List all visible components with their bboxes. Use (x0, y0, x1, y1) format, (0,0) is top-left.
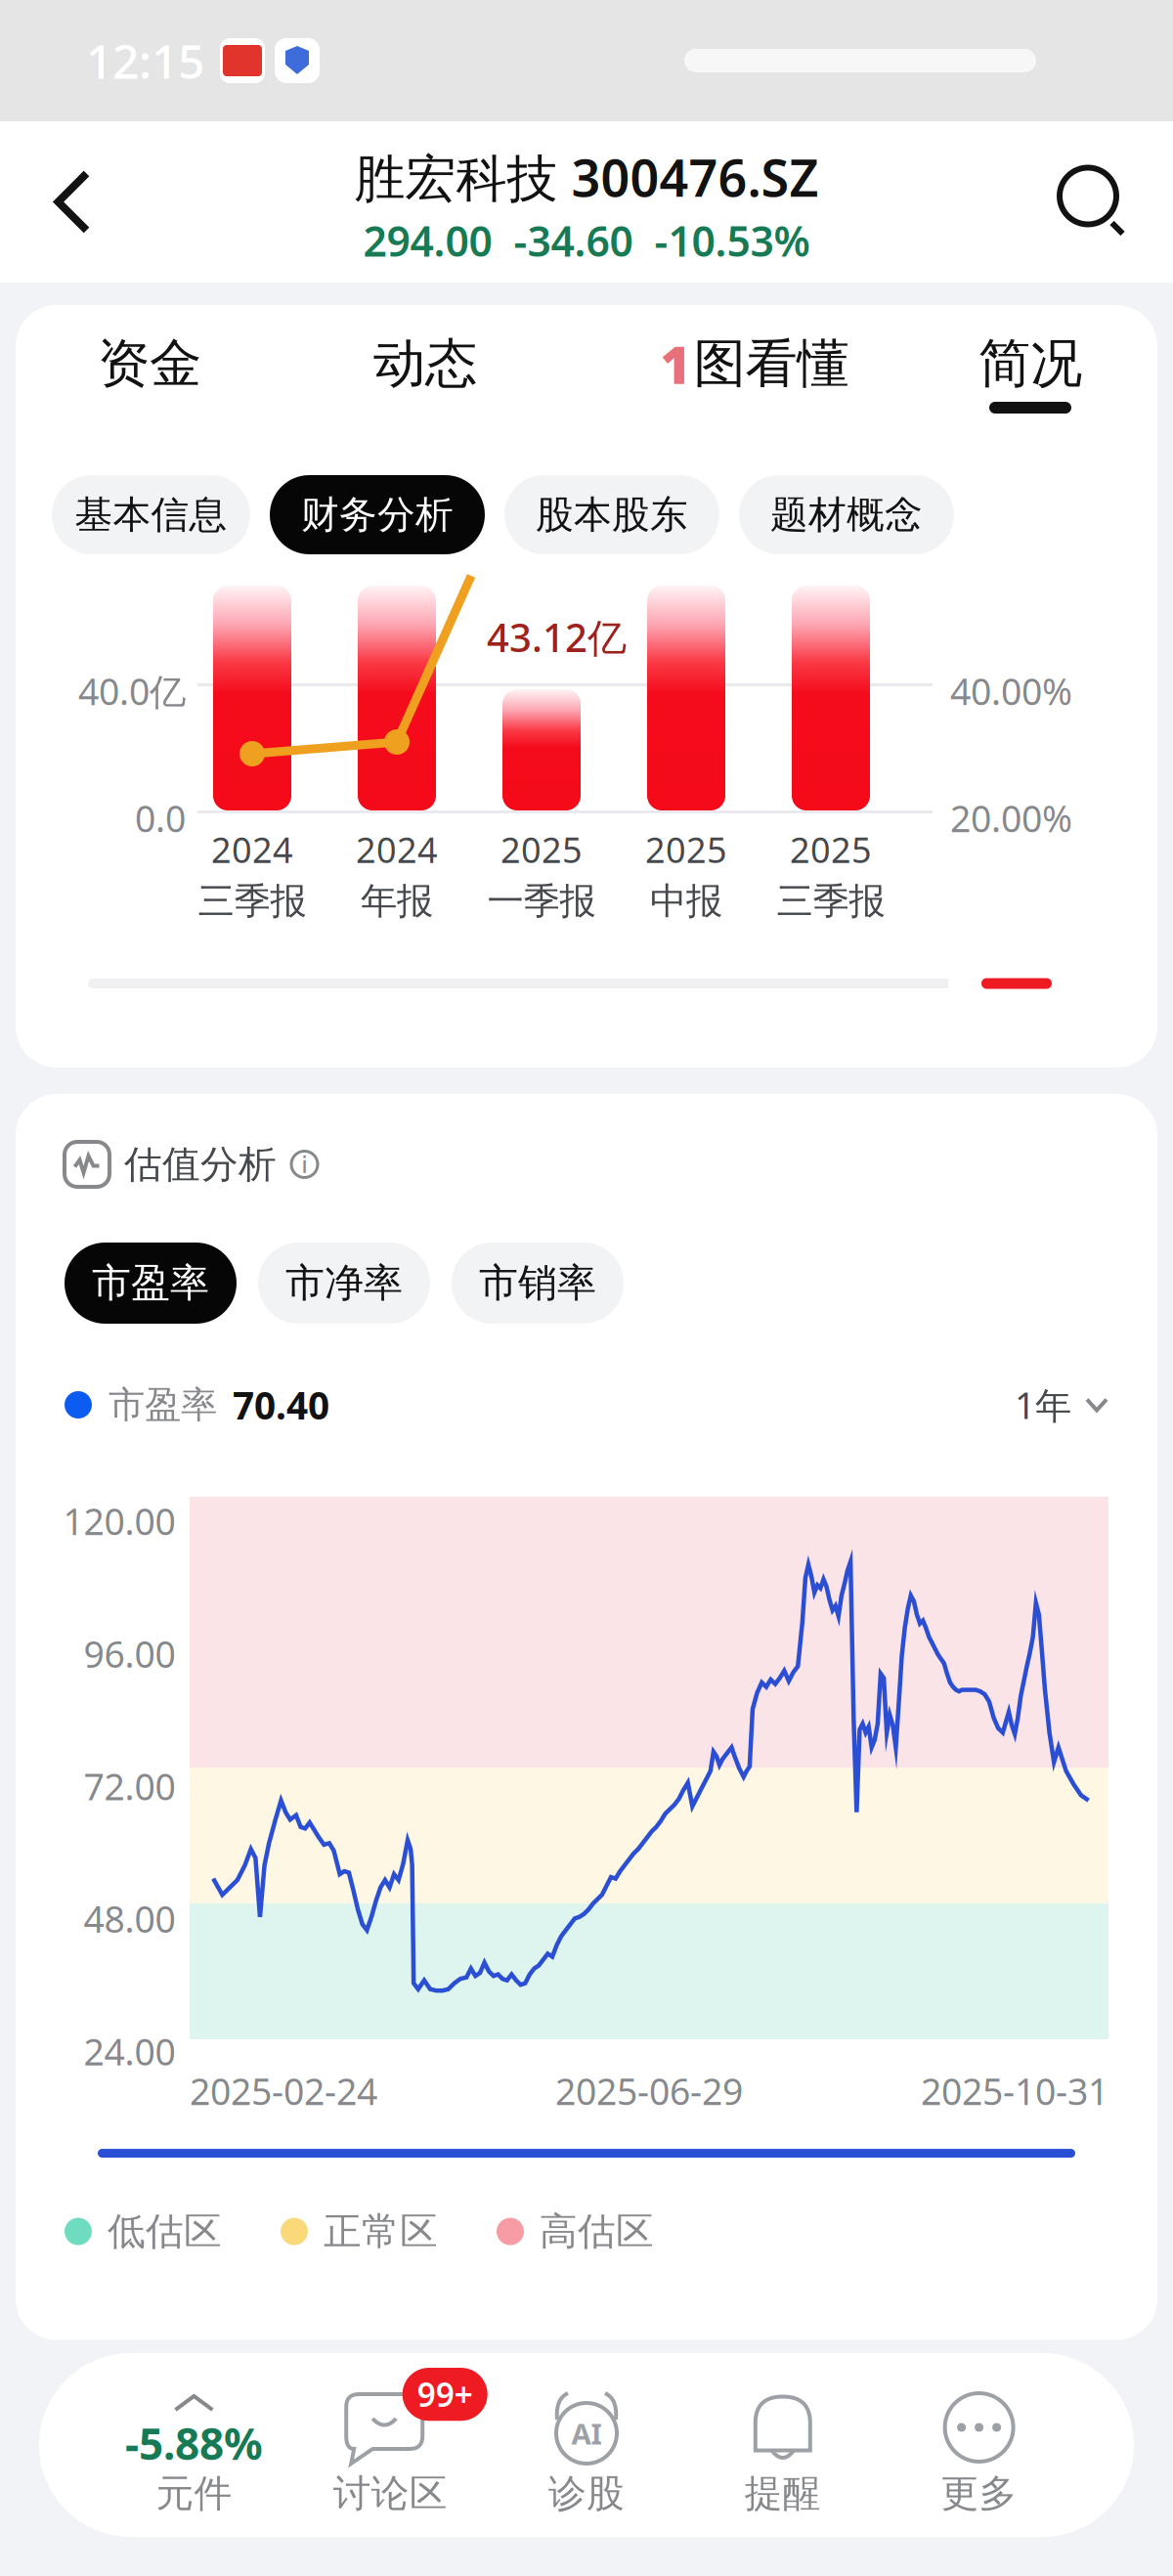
staticText: 胜宏科技 300476.SZ (354, 143, 819, 211)
staticText: 财务分析 (301, 492, 454, 538)
staticText: 0.0 (135, 794, 186, 842)
staticText: 市净率 (285, 1259, 403, 1307)
button[interactable]: 1 (608, 336, 901, 414)
staticText: 2025-06-29 (555, 2067, 743, 2115)
staticText: 1 (660, 329, 691, 398)
staticText: -5.88% (125, 2415, 263, 2472)
staticText: 元件 (156, 2470, 232, 2517)
staticText: 三季报 (198, 879, 306, 924)
staticText: 市销率 (479, 1259, 596, 1307)
button[interactable]: 市盈率 (65, 1243, 237, 1324)
button[interactable]: Search (1028, 121, 1173, 283)
staticText: 70.40 (233, 1380, 329, 1430)
staticText: 72.00 (84, 1762, 175, 1810)
button[interactable]: -5.88% (96, 2377, 292, 2513)
staticText: 99+ (417, 2373, 473, 2416)
button[interactable]: 市销率 (452, 1243, 624, 1324)
staticText: 基本信息 (75, 492, 227, 538)
staticText: 294.00 -34.60 -10.53% (363, 213, 810, 268)
staticText: 12:15 (86, 29, 204, 92)
staticText: 2025-02-24 (190, 2067, 377, 2115)
staticText: 题材概念 (770, 492, 923, 538)
button[interactable]: 财务分析 (270, 475, 485, 554)
staticText: 2024 (211, 826, 293, 873)
staticText: 动态 (373, 332, 477, 396)
staticText: 提醒 (745, 2470, 821, 2517)
staticText: 简况 (978, 332, 1082, 396)
staticText: 三季报 (777, 879, 885, 924)
staticText: 20.00% (950, 794, 1072, 842)
staticText: 2025 (645, 826, 727, 873)
staticText: 48.00 (84, 1894, 175, 1943)
staticText: 2025 (790, 826, 872, 873)
staticText: 43.12亿 (487, 611, 627, 663)
button[interactable]: 更多 (881, 2377, 1077, 2513)
button[interactable]: 市净率 (258, 1243, 430, 1324)
button[interactable]: 1年 (1015, 1381, 1108, 1429)
staticText: 股本股东 (536, 492, 688, 538)
staticText: 2025 (500, 826, 583, 873)
staticText: 一季报 (487, 879, 596, 924)
staticText: AI (571, 2414, 602, 2452)
button[interactable]: 提醒 (685, 2377, 881, 2513)
button[interactable]: 基本信息 (52, 475, 250, 554)
staticText: 2025-10-31 (921, 2067, 1108, 2115)
staticText: 市盈率 (92, 1259, 209, 1307)
staticText: 40.0亿 (78, 667, 186, 715)
staticText: 中报 (650, 879, 722, 924)
button[interactable]: 资金 (3, 336, 296, 414)
button[interactable]: Back (0, 121, 145, 283)
staticText: 市盈率 (109, 1382, 217, 1427)
button[interactable]: 题材概念 (739, 475, 954, 554)
staticText: 1年 (1015, 1381, 1071, 1429)
staticText: 120.00 (63, 1497, 175, 1545)
staticText: 图看懂 (694, 332, 849, 396)
staticText: 年报 (361, 879, 433, 924)
button[interactable]: 99+ (292, 2377, 488, 2513)
staticText: 更多 (941, 2470, 1017, 2517)
staticText: 讨论区 (333, 2470, 447, 2517)
staticText: 估值分析 (124, 1141, 277, 1188)
button[interactable]: 简况 (884, 336, 1173, 414)
button[interactable]: 动态 (279, 336, 572, 414)
staticText: 低估区 (108, 2208, 222, 2255)
staticText: 高估区 (540, 2208, 654, 2255)
button[interactable]: 股本股东 (504, 475, 719, 554)
staticText: i (302, 1150, 307, 1179)
staticText: 正常区 (324, 2208, 438, 2255)
button[interactable]: AI (488, 2377, 685, 2513)
staticText: 诊股 (548, 2470, 625, 2517)
staticText: 资金 (98, 332, 201, 396)
staticText: 2024 (356, 826, 438, 873)
staticText: 40.00% (950, 667, 1072, 715)
staticText: 96.00 (84, 1629, 175, 1678)
staticText: 24.00 (84, 2027, 175, 2075)
